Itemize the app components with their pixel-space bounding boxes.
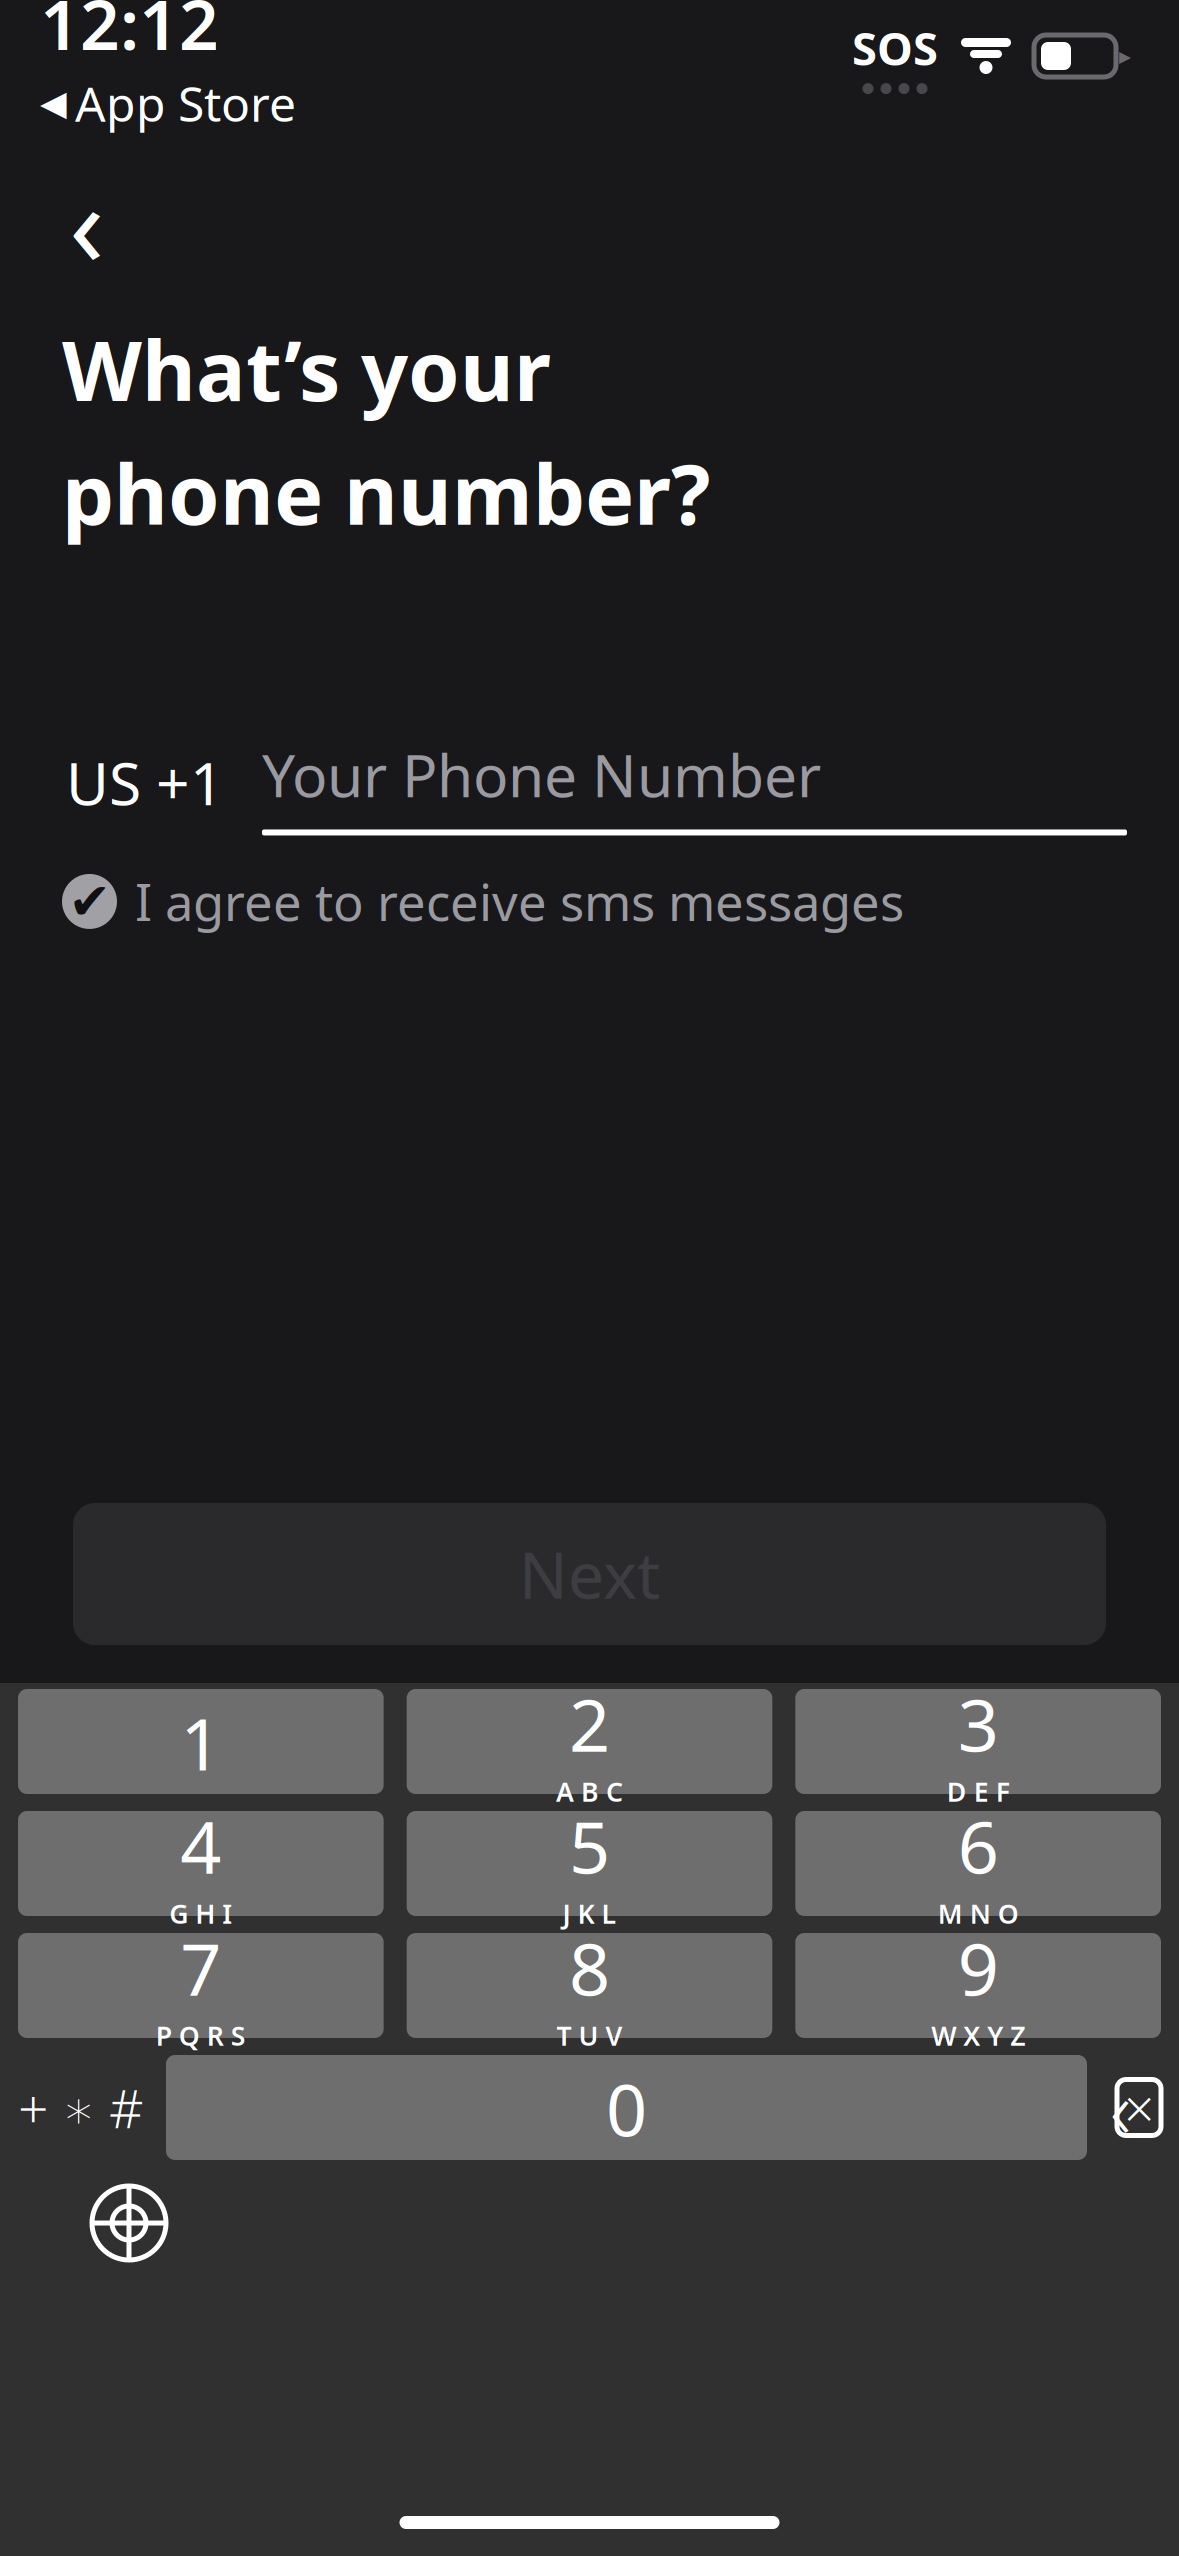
staticText: SOS bbox=[852, 18, 938, 78]
staticText: ▸ bbox=[1119, 42, 1131, 70]
staticText: 4 bbox=[180, 1798, 221, 1894]
button[interactable]: Back bbox=[52, 178, 122, 266]
button[interactable]: Next keyboard bbox=[90, 2184, 168, 2262]
staticText: 3 bbox=[958, 1676, 999, 1772]
staticText: ‹ bbox=[69, 146, 105, 298]
staticText: J K L bbox=[562, 1896, 616, 1931]
button[interactable]: 3 bbox=[795, 1689, 1161, 1794]
button[interactable]: 4 bbox=[18, 1811, 384, 1916]
button[interactable]: ✔ bbox=[0, 865, 1179, 937]
staticText: × bbox=[1124, 2072, 1154, 2143]
staticText: ‹ bbox=[1110, 2054, 1131, 2161]
staticText: I agree to receive sms messages bbox=[135, 868, 904, 935]
button[interactable]: 5 bbox=[407, 1811, 772, 1916]
staticText: ◀ bbox=[40, 83, 67, 123]
button[interactable]: 1 bbox=[18, 1689, 384, 1794]
button[interactable]: 9 bbox=[795, 1933, 1161, 2038]
staticText: 12:12 bbox=[40, 0, 219, 69]
staticText: phone number? bbox=[62, 438, 710, 548]
staticText: 0 bbox=[606, 2061, 647, 2156]
staticText: What’s your bbox=[62, 314, 551, 424]
button[interactable]: Delete bbox=[1110, 2055, 1161, 2160]
staticText: 8 bbox=[569, 1920, 610, 2016]
button[interactable]: 6 bbox=[795, 1811, 1161, 1916]
button[interactable]: Plus, star, pound bbox=[18, 2055, 143, 2160]
staticText: D E F bbox=[947, 1774, 1010, 1809]
staticText: 2 bbox=[569, 1676, 610, 1772]
staticText: ✔ bbox=[68, 873, 110, 930]
staticText: + ∗ # bbox=[18, 2072, 143, 2143]
button[interactable]: 8 bbox=[407, 1933, 772, 2038]
button[interactable]: 0 bbox=[166, 2055, 1087, 2160]
button[interactable]: 2 bbox=[407, 1689, 772, 1794]
button[interactable]: Next bbox=[0, 1503, 1179, 1645]
staticText: P Q R S bbox=[156, 2018, 246, 2053]
staticText: 1 bbox=[180, 1695, 221, 1790]
staticText: 6 bbox=[958, 1798, 999, 1894]
staticText: W X Y Z bbox=[931, 2018, 1025, 2053]
staticText: G H I bbox=[169, 1896, 232, 1931]
staticText: 7 bbox=[180, 1920, 221, 2016]
staticText: 5 bbox=[569, 1798, 610, 1894]
staticText: M N O bbox=[938, 1896, 1019, 1931]
button[interactable]: 7 bbox=[18, 1933, 384, 2038]
staticText: A B C bbox=[556, 1774, 623, 1809]
staticText: Next bbox=[519, 1531, 660, 1616]
staticText: App Store bbox=[75, 71, 296, 135]
staticText: Your Phone Number bbox=[262, 736, 821, 813]
staticText: 9 bbox=[958, 1920, 999, 2016]
staticText: US +1 bbox=[66, 744, 224, 821]
staticText: T U V bbox=[556, 2018, 622, 2053]
